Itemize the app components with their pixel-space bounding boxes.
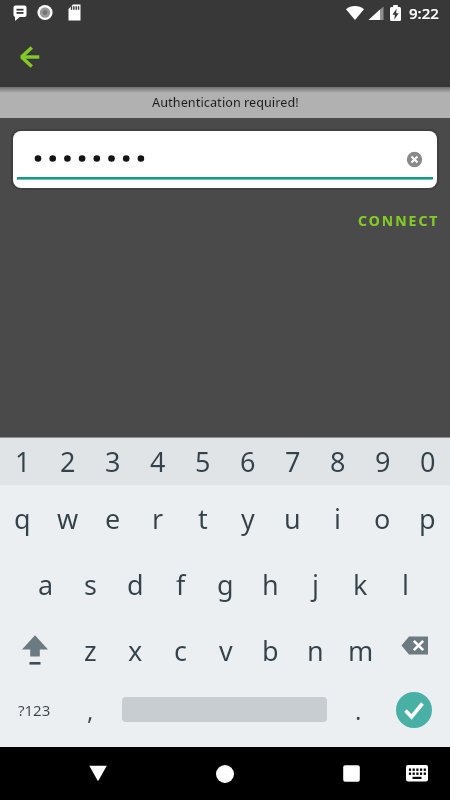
button[interactable]: x (113, 617, 158, 683)
button[interactable]: h (248, 551, 293, 617)
staticText: 9 (375, 443, 391, 480)
staticText: ?123 (18, 700, 51, 720)
button[interactable]: 7 (270, 438, 315, 485)
staticText: 1 (15, 443, 31, 480)
button[interactable]: f (158, 551, 203, 617)
staticText: 6 (240, 443, 256, 480)
button[interactable]: s (68, 551, 113, 617)
button[interactable]: j (293, 551, 338, 617)
button[interactable] (0, 617, 68, 683)
button[interactable]: r (135, 485, 180, 551)
button[interactable]: 5 (180, 438, 225, 485)
button[interactable] (399, 144, 430, 175)
staticText: m (348, 632, 374, 669)
staticText: o (374, 500, 391, 537)
staticText: 5 (195, 443, 211, 480)
button[interactable]: 3 (90, 438, 135, 485)
staticText: 3 (105, 443, 121, 480)
button[interactable]: 8 (315, 438, 360, 485)
staticText: s (84, 566, 97, 603)
staticText: e (105, 500, 121, 537)
button[interactable] (201, 750, 249, 798)
staticText: , (87, 694, 94, 727)
button[interactable]: 2 (45, 438, 90, 485)
staticText: g (217, 566, 234, 603)
staticText: c (174, 632, 187, 669)
staticText: j (312, 566, 319, 603)
button[interactable]: k (338, 551, 383, 617)
button[interactable] (13, 131, 437, 188)
staticText: l (402, 566, 409, 603)
staticText: q (14, 500, 31, 537)
button[interactable]: d (113, 551, 158, 617)
button[interactable]: CONNECT (351, 204, 447, 236)
button[interactable]: 0 (405, 438, 450, 485)
staticText: 4 (150, 443, 166, 480)
button[interactable] (7, 33, 55, 81)
staticText: . (355, 694, 362, 727)
button[interactable]: 9 (360, 438, 405, 485)
button[interactable]: l (383, 551, 428, 617)
button[interactable]: u (270, 485, 315, 551)
button[interactable]: e (90, 485, 135, 551)
button[interactable]: p (405, 485, 450, 551)
button[interactable]: c (158, 617, 203, 683)
button[interactable] (327, 749, 375, 797)
staticText: a (38, 566, 54, 603)
staticText: w (57, 500, 79, 537)
staticText: d (127, 566, 144, 603)
staticText: h (262, 566, 279, 603)
button[interactable]: n (293, 617, 338, 683)
button[interactable]: y (225, 485, 270, 551)
button[interactable]: 1 (0, 438, 45, 485)
staticText: 7 (285, 443, 301, 480)
button[interactable]: q (0, 485, 45, 551)
staticText: 8 (330, 443, 346, 480)
button[interactable]: , (67, 680, 113, 740)
staticText: CONNECT (358, 211, 440, 230)
staticText: p (419, 500, 436, 537)
staticText: x (128, 632, 143, 669)
staticText: k (353, 566, 368, 603)
button[interactable]: g (203, 551, 248, 617)
staticText: f (176, 566, 186, 603)
button[interactable]: ?123 (0, 680, 68, 740)
button[interactable]: t (180, 485, 225, 551)
staticText: r (152, 500, 164, 537)
button[interactable]: o (360, 485, 405, 551)
button[interactable]: b (248, 617, 293, 683)
button[interactable]: 4 (135, 438, 180, 485)
staticText: i (334, 500, 341, 537)
staticText: z (84, 632, 97, 669)
button[interactable]: v (203, 617, 248, 683)
staticText: 9:22 (409, 3, 439, 23)
staticText: Authentication required! (152, 94, 299, 111)
button[interactable]: a (23, 551, 68, 617)
button[interactable]: i (315, 485, 360, 551)
staticText: n (307, 632, 324, 669)
staticText: v (219, 632, 233, 669)
button[interactable] (382, 617, 450, 683)
staticText: b (262, 632, 279, 669)
staticText: 0 (420, 443, 436, 480)
staticText: t (198, 500, 208, 537)
button[interactable] (74, 749, 122, 797)
button[interactable]: w (45, 485, 90, 551)
staticText: 2 (60, 443, 76, 480)
button[interactable] (396, 692, 432, 728)
staticText: u (284, 500, 301, 537)
button[interactable]: . (335, 680, 381, 740)
staticText: y (241, 500, 255, 537)
button[interactable]: 6 (225, 438, 270, 485)
button[interactable]: z (68, 617, 113, 683)
button[interactable]: m (338, 617, 383, 683)
button[interactable] (395, 751, 439, 795)
